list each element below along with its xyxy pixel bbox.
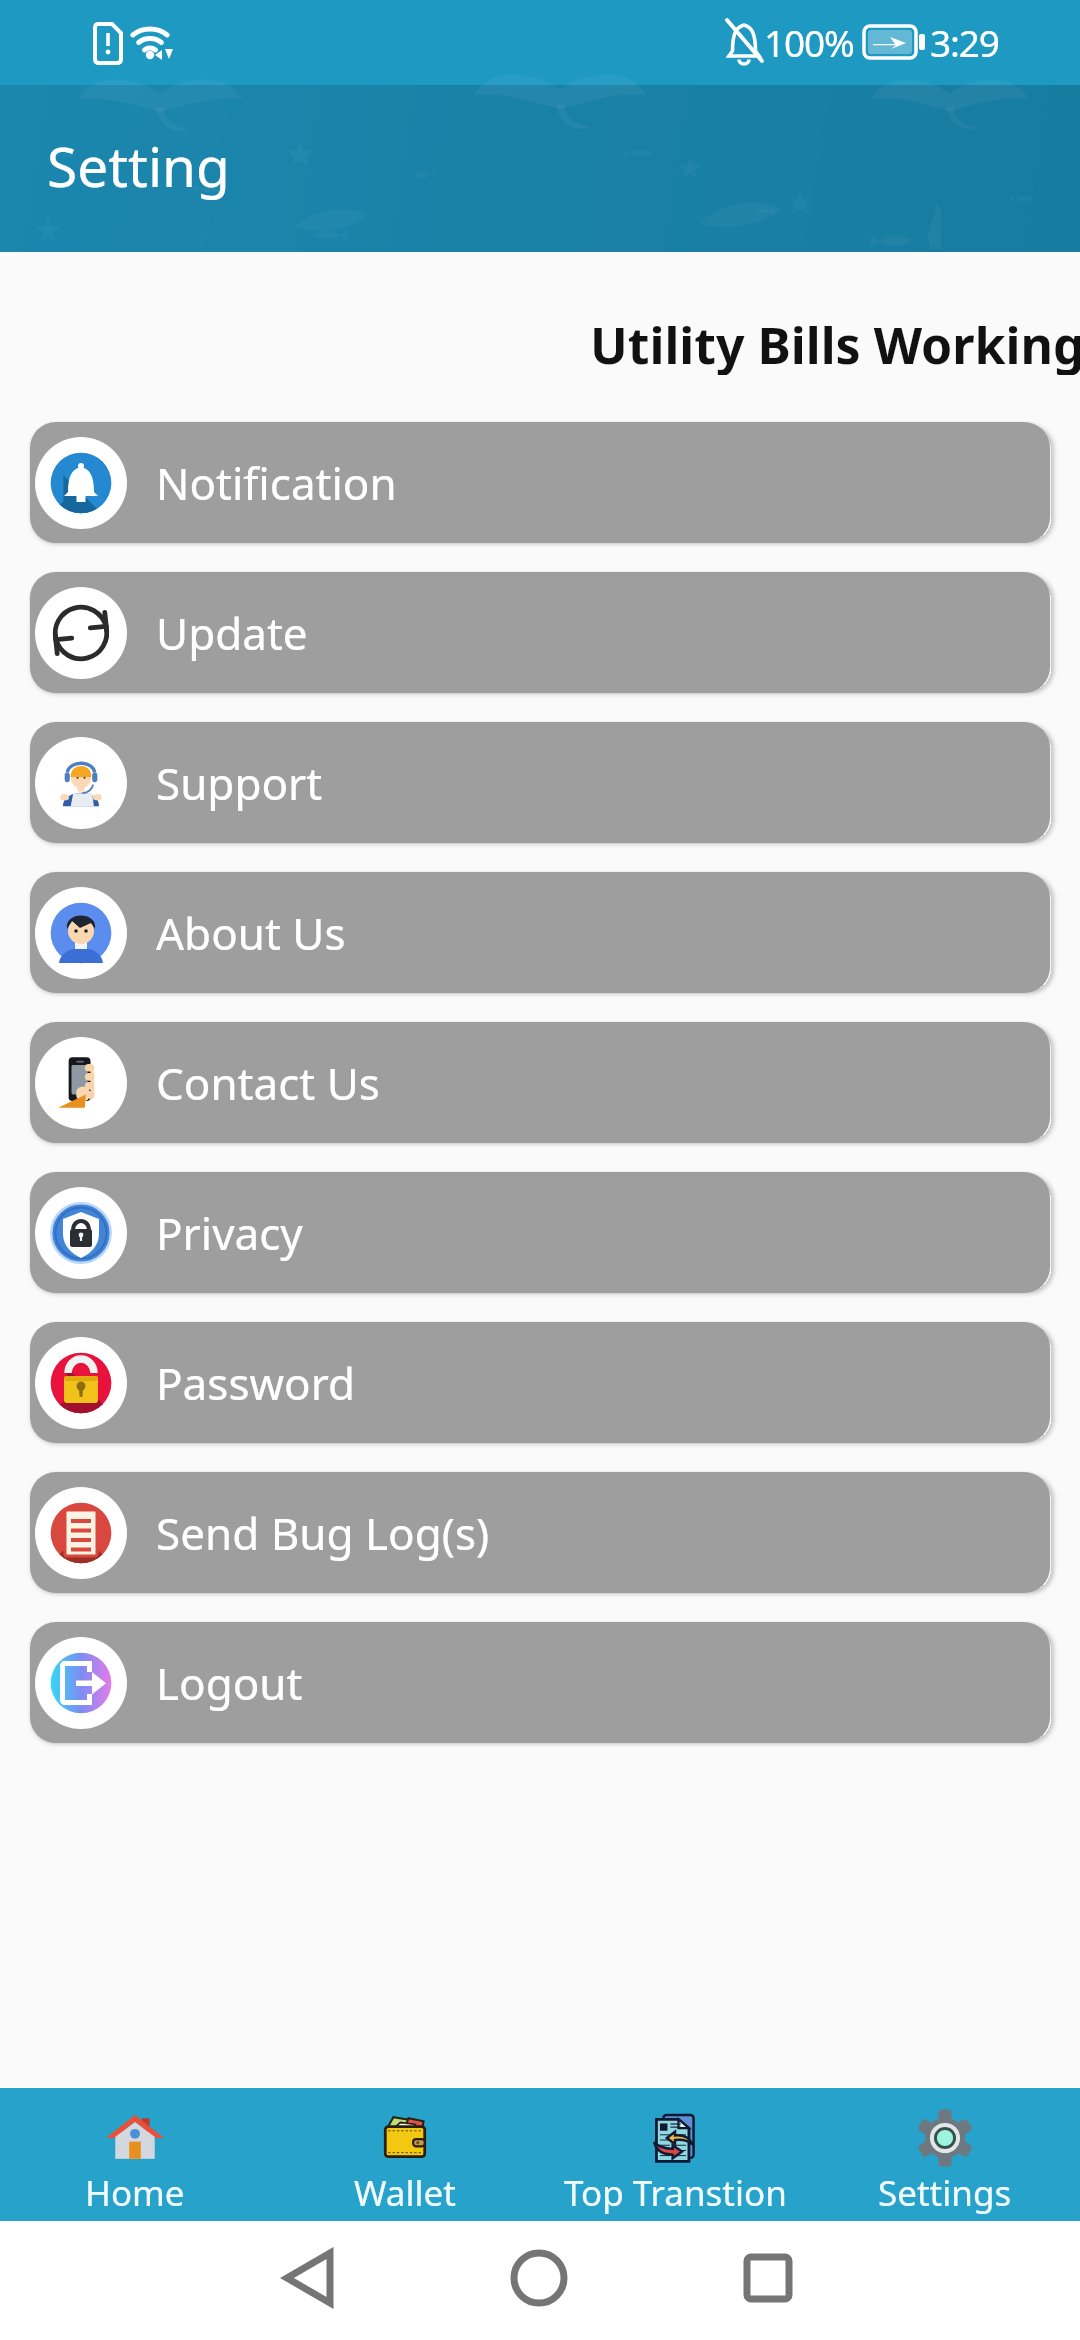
button[interactable]: Settings	[810, 2088, 1080, 2221]
staticText: Contact Us	[156, 1053, 380, 1113]
button[interactable]: Top Transtion	[540, 2088, 810, 2221]
staticText: Settings	[878, 2169, 1012, 2217]
staticText: Send Bug Log(s)	[156, 1503, 490, 1563]
staticText: Utility Bills Working fro	[590, 311, 1080, 375]
staticText: Wallet	[354, 2169, 456, 2217]
button[interactable]: Home	[0, 2088, 270, 2221]
staticText: Notification	[156, 453, 397, 513]
staticText: Support	[156, 753, 323, 813]
staticText: 100%	[764, 17, 854, 67]
button[interactable]: Notification	[30, 422, 1050, 543]
button[interactable]: Password	[30, 1322, 1050, 1443]
staticText: Top Transtion	[564, 2169, 787, 2217]
button[interactable]: Home	[474, 2233, 604, 2323]
staticText: Privacy	[156, 1203, 303, 1263]
button[interactable]: About Us	[30, 872, 1050, 993]
staticText: Update	[156, 603, 308, 663]
button[interactable]: Update	[30, 572, 1050, 693]
button[interactable]: Back	[248, 2233, 378, 2323]
button[interactable]: Privacy	[30, 1172, 1050, 1293]
button[interactable]: Send Bug Log(s)	[30, 1472, 1050, 1593]
button[interactable]: Wallet	[270, 2088, 540, 2221]
button[interactable]: Recent apps	[703, 2233, 833, 2323]
staticText: 3:29	[930, 17, 999, 67]
button[interactable]: Logout	[30, 1622, 1050, 1743]
staticText: Setting	[47, 128, 230, 203]
staticText: About Us	[156, 903, 346, 963]
staticText: Logout	[156, 1653, 303, 1713]
button[interactable]: Contact Us	[30, 1022, 1050, 1143]
staticText: Password	[156, 1353, 356, 1413]
staticText: Home	[85, 2169, 185, 2217]
button[interactable]: Support	[30, 722, 1050, 843]
